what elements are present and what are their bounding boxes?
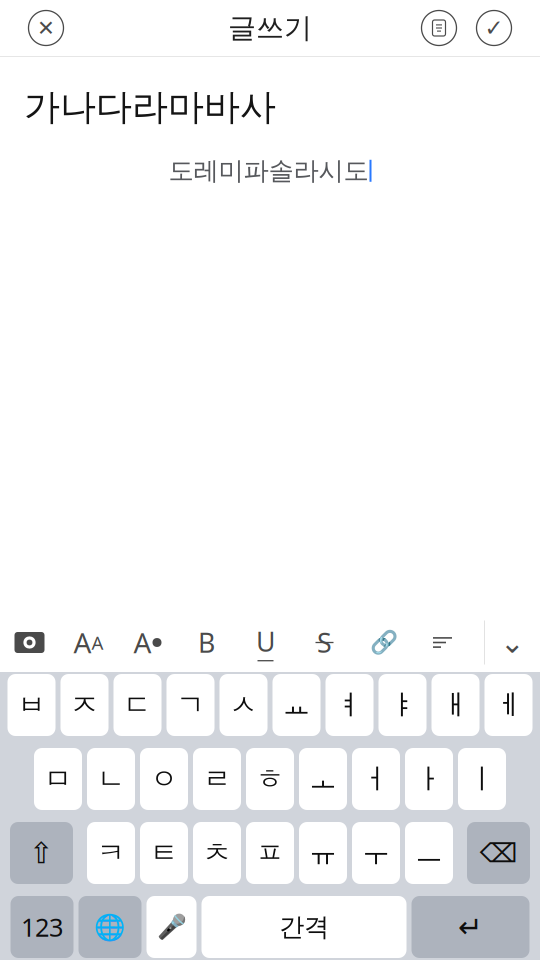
button[interactable]: ㅗ — [299, 748, 347, 810]
staticText: ㅇ — [150, 762, 178, 796]
staticText: A — [133, 624, 151, 661]
button[interactable]: Hide keyboard — [485, 613, 540, 672]
button[interactable]: Backspace — [467, 822, 530, 884]
staticText: ㄹ — [203, 762, 231, 796]
staticText: ㅏ — [415, 762, 443, 796]
button[interactable]: Bold — [177, 613, 236, 672]
button[interactable]: Underline — [236, 613, 295, 672]
button[interactable]: Shift — [10, 822, 73, 884]
staticText: B — [198, 625, 215, 660]
button[interactable]: ㅜ — [352, 822, 400, 884]
button[interactable]: ㅣ — [458, 748, 506, 810]
staticText: 글쓰기 — [228, 11, 312, 45]
button[interactable]: 간격 — [201, 896, 406, 958]
staticText: ㅌ — [150, 836, 178, 870]
staticText: ↵ — [458, 910, 483, 944]
staticText: ㅑ — [388, 688, 416, 722]
button[interactable]: ㅅ — [219, 674, 267, 736]
staticText: ㅂ — [17, 688, 45, 722]
staticText: 123 — [21, 910, 63, 944]
staticText: ㅓ — [362, 762, 390, 796]
staticText: ㅐ — [441, 688, 469, 722]
staticText: ✕ — [37, 16, 55, 40]
button[interactable]: ㅕ — [325, 674, 373, 736]
button[interactable]: ㅠ — [299, 822, 347, 884]
button[interactable]: ㅡ — [405, 822, 453, 884]
staticText: ㅣ — [468, 762, 496, 796]
button[interactable]: Strikethrough — [295, 613, 354, 672]
button[interactable]: ㅐ — [431, 674, 479, 736]
button[interactable]: Insert link — [354, 613, 413, 672]
staticText: S — [317, 625, 332, 660]
button[interactable]: ㅊ — [193, 822, 241, 884]
staticText: ⌫ — [479, 838, 517, 868]
staticText: ㄴ — [97, 762, 125, 796]
staticText: ㅍ — [256, 836, 284, 870]
button[interactable]: ㅁ — [34, 748, 82, 810]
button[interactable]: ㅋ — [87, 822, 135, 884]
staticText: ㅡ — [415, 836, 443, 870]
staticText: ㅕ — [335, 688, 363, 722]
staticText: ㅋ — [97, 836, 125, 870]
staticText: 🌐 — [94, 912, 126, 941]
staticText: ㅊ — [203, 836, 231, 870]
button[interactable]: ㅏ — [405, 748, 453, 810]
staticText: ㅎ — [256, 762, 284, 796]
button[interactable]: Numbers — [10, 896, 73, 958]
button[interactable]: ㅇ — [140, 748, 188, 810]
button[interactable]: ㄱ — [166, 674, 214, 736]
button[interactable]: ㅔ — [484, 674, 532, 736]
button[interactable]: ㅂ — [7, 674, 55, 736]
staticText: 도레미파솔라시도 — [168, 155, 368, 186]
button[interactable]: ㄹ — [193, 748, 241, 810]
button[interactable]: Align — [413, 613, 472, 672]
staticText: ㅁ — [44, 762, 72, 796]
staticText: 가나다라마바사 — [24, 85, 276, 129]
button[interactable]: Switch keyboard — [78, 896, 141, 958]
staticText: 🔗 — [369, 630, 397, 655]
staticText: ㅗ — [309, 762, 337, 796]
staticText: U — [256, 624, 275, 659]
staticText: ㄱ — [176, 688, 204, 722]
staticText: ✓ — [484, 15, 503, 41]
button[interactable]: ㄷ — [113, 674, 161, 736]
staticText: ㅅ — [229, 688, 257, 722]
button[interactable]: Text color — [118, 613, 177, 672]
staticText: ㅛ — [282, 688, 310, 722]
button[interactable]: Return — [411, 896, 529, 958]
button[interactable]: ㅑ — [378, 674, 426, 736]
button[interactable]: Done — [466, 0, 522, 56]
staticText: ⌄ — [500, 626, 525, 659]
staticText: A — [73, 624, 91, 661]
button[interactable]: Dictate — [146, 896, 196, 958]
button[interactable]: Font size — [59, 613, 118, 672]
button[interactable]: ㄴ — [87, 748, 135, 810]
staticText: ㅔ — [494, 688, 522, 722]
button[interactable]: ㅛ — [272, 674, 320, 736]
staticText: ㅠ — [309, 836, 337, 870]
button[interactable]: ㅓ — [352, 748, 400, 810]
button[interactable]: ㅎ — [246, 748, 294, 810]
staticText: ㄷ — [123, 688, 151, 722]
staticText: ㅜ — [362, 836, 390, 870]
button[interactable]: Close — [18, 0, 74, 56]
button[interactable]: ㅌ — [140, 822, 188, 884]
staticText: ㅈ — [70, 688, 98, 722]
staticText: 🎤 — [156, 913, 186, 941]
staticText: A — [91, 630, 103, 655]
staticText: 간격 — [279, 911, 329, 942]
button[interactable]: ㅍ — [246, 822, 294, 884]
button[interactable]: ㅈ — [60, 674, 108, 736]
button[interactable]: Save draft — [412, 0, 466, 56]
staticText: ⇧ — [29, 836, 54, 870]
button[interactable]: Insert photo — [0, 613, 59, 672]
